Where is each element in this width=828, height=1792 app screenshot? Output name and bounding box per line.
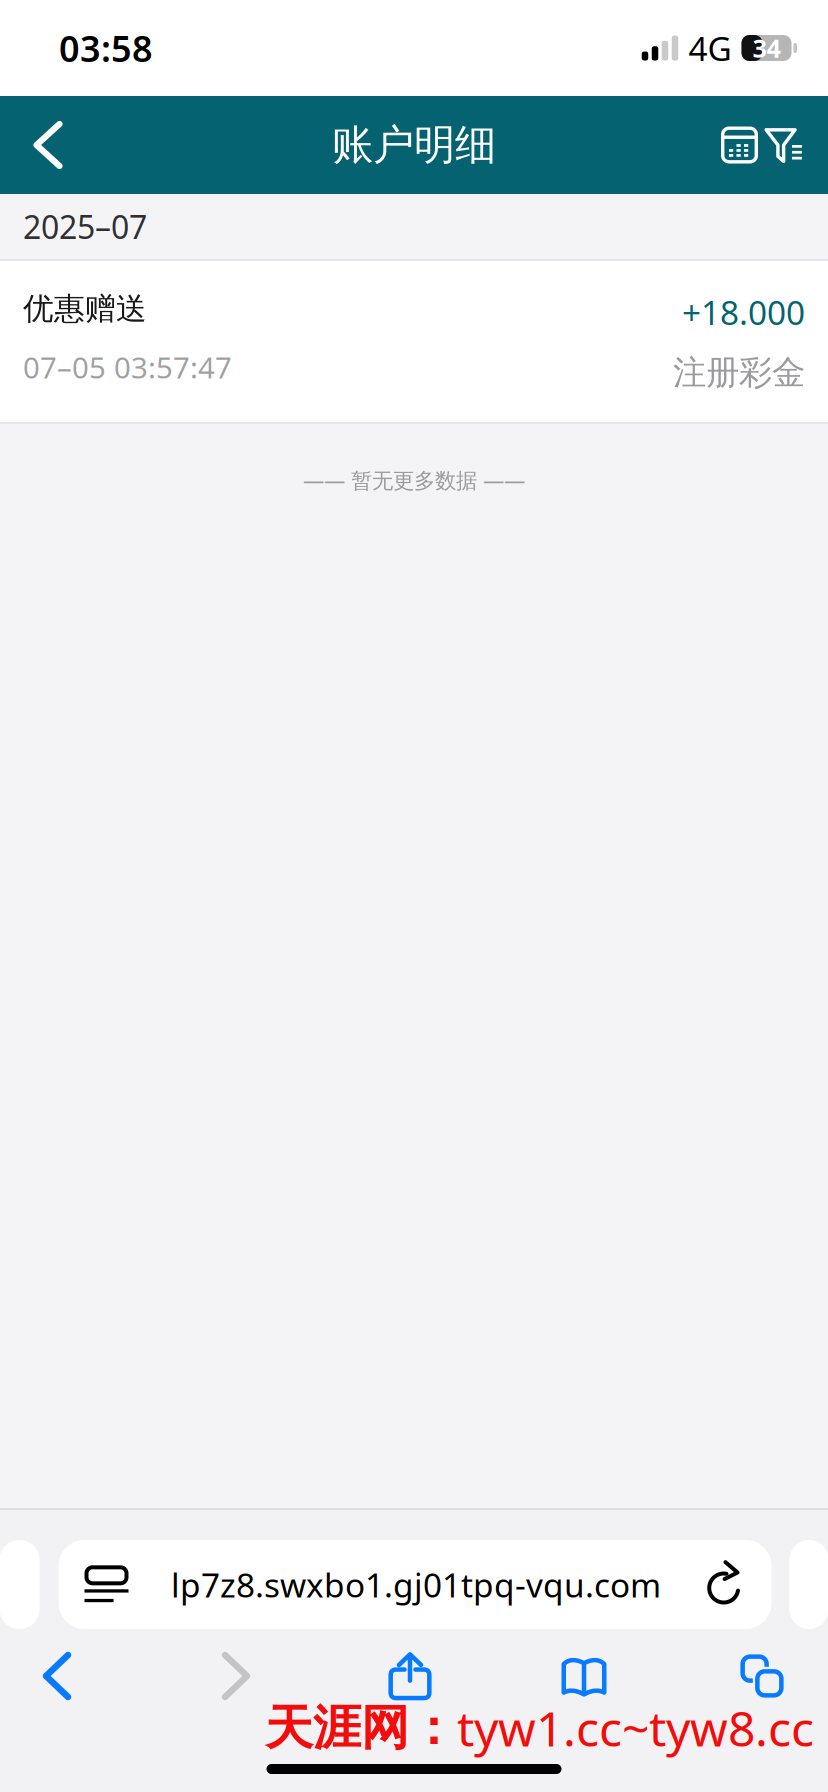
button[interactable]: 后退 (0, 1645, 114, 1707)
staticText: tyw1.cc~tyw8.cc (457, 1696, 814, 1760)
button[interactable]: 分享 (358, 1645, 462, 1707)
staticText: 账户明细 (332, 120, 496, 170)
button[interactable]: 优惠赠送 (0, 261, 828, 422)
staticText: 07–05 03:57:47 (23, 348, 232, 387)
staticText: 4G (688, 26, 731, 70)
button[interactable]: 返回 (0, 96, 96, 194)
staticText: 天涯网： (265, 1698, 457, 1757)
staticText: 2025–07 (23, 205, 147, 248)
button[interactable]: 标签页 (706, 1645, 818, 1707)
button[interactable]: 日期筛选 (721, 126, 758, 163)
staticText: —— 暂无更多数据 —— (303, 466, 525, 494)
button[interactable]: 书签 (462, 1645, 706, 1707)
staticText: lp7z8.swxbo1.gj01tpq-vqu.com (171, 1562, 661, 1607)
staticText: 03:58 (59, 24, 153, 72)
button[interactable]: 前进 (114, 1645, 358, 1707)
staticText: 注册彩金 (673, 352, 805, 393)
staticText: 34 (752, 31, 780, 65)
button[interactable]: 类型筛选 (765, 126, 803, 164)
button[interactable]: lp7z8.swxbo1.gj01tpq-vqu.com (58, 1540, 771, 1629)
staticText: 优惠赠送 (23, 290, 147, 328)
staticText: +18.000 (682, 290, 805, 334)
